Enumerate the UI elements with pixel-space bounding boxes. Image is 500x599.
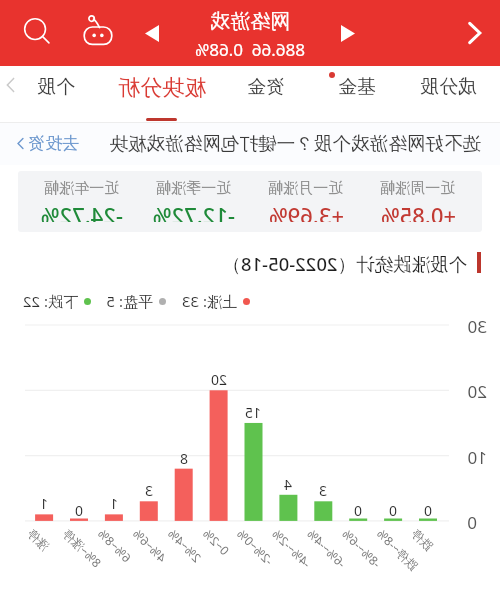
button[interactable]: 上涨: 33 (181, 291, 250, 311)
staticText: 个股 (37, 75, 75, 99)
staticText: 基金 (338, 75, 376, 99)
button[interactable]: 资金 (216, 66, 316, 122)
staticText: +3.69% (268, 200, 344, 222)
staticText: -8%~-6% (339, 525, 385, 571)
staticText: 1 (39, 494, 48, 512)
staticText: 3 (318, 481, 327, 499)
button[interactable]: Search (14, 8, 60, 54)
button[interactable]: 下跌: 22 (22, 291, 91, 311)
staticText: 0 (423, 501, 432, 519)
button[interactable]: 近一季涨幅 (138, 171, 250, 232)
staticText: 0 (74, 501, 83, 519)
button[interactable]: 板块分析 (112, 66, 212, 122)
staticText: 10 (467, 446, 487, 466)
button[interactable]: Previous sector (333, 18, 363, 48)
staticText: 8 (179, 449, 188, 467)
staticText: 上涨: 33 (181, 291, 237, 311)
staticText: 4 (283, 475, 292, 493)
staticText: 近一年涨幅 (44, 179, 119, 195)
button[interactable]: 近一月涨幅 (250, 171, 362, 232)
staticText: 平盘: 5 (106, 291, 153, 311)
button[interactable]: More tabs (0, 74, 22, 96)
staticText: +0.85% (380, 200, 456, 222)
staticText: 网络游戏 (210, 9, 290, 32)
button[interactable]: 成分股 (399, 66, 499, 122)
button[interactable]: 平盘: 5 (106, 291, 166, 311)
staticText: 资金 (247, 75, 285, 99)
staticText: 0 (388, 501, 397, 519)
staticText: 6%~8% (95, 525, 135, 565)
button[interactable]: 近一周涨幅 (362, 171, 474, 232)
staticText: 4%~6% (130, 525, 170, 565)
staticText: 0 (353, 501, 362, 519)
button[interactable]: 近一年涨幅 (26, 171, 138, 232)
staticText: 886.66 0.68% (195, 38, 305, 58)
staticText: 跌停~-8% (374, 525, 422, 573)
staticText: 20 (467, 380, 487, 400)
staticText: 涨停 (25, 526, 52, 553)
staticText: 0~2% (200, 525, 233, 558)
button[interactable]: 个股 (6, 66, 106, 122)
staticText: 2%~4% (165, 525, 205, 565)
staticText: 选不好网络游戏个股？一键打包网络游戏板块 (109, 132, 481, 154)
button[interactable]: 基金 (307, 66, 407, 122)
staticText: 30 (467, 315, 487, 335)
staticText: 15 (244, 403, 261, 421)
button[interactable]: Next sector (137, 18, 167, 48)
staticText: 3 (144, 481, 153, 499)
staticText: -2%~0% (234, 525, 277, 568)
button[interactable]: 选不好网络游戏个股？一键打包网络游戏板块 (0, 123, 500, 165)
staticText: 近一周涨幅 (380, 179, 455, 195)
staticText: -6%~-4% (304, 525, 350, 571)
staticText: 8%~涨停 (60, 525, 105, 570)
staticText: 去投资 (28, 133, 79, 154)
staticText: 20 (210, 370, 227, 388)
staticText: -12.72% (152, 200, 235, 222)
staticText: 板块分析 (118, 74, 206, 100)
staticText: 近一月涨幅 (268, 179, 343, 195)
staticText: 成分股 (420, 75, 477, 99)
staticText: 跌停 (409, 526, 436, 553)
button[interactable]: Back (452, 10, 498, 56)
staticText: 近一季涨幅 (156, 179, 231, 195)
staticText: 1 (109, 494, 118, 512)
staticText: 个股涨跌统计（2022-05-18） (222, 251, 467, 276)
staticText: -4%~-2% (269, 525, 315, 571)
staticText: -24.72% (40, 200, 123, 222)
staticText: 下跌: 22 (22, 291, 78, 311)
button[interactable]: Assistant (78, 10, 118, 50)
staticText: 0 (467, 511, 477, 531)
